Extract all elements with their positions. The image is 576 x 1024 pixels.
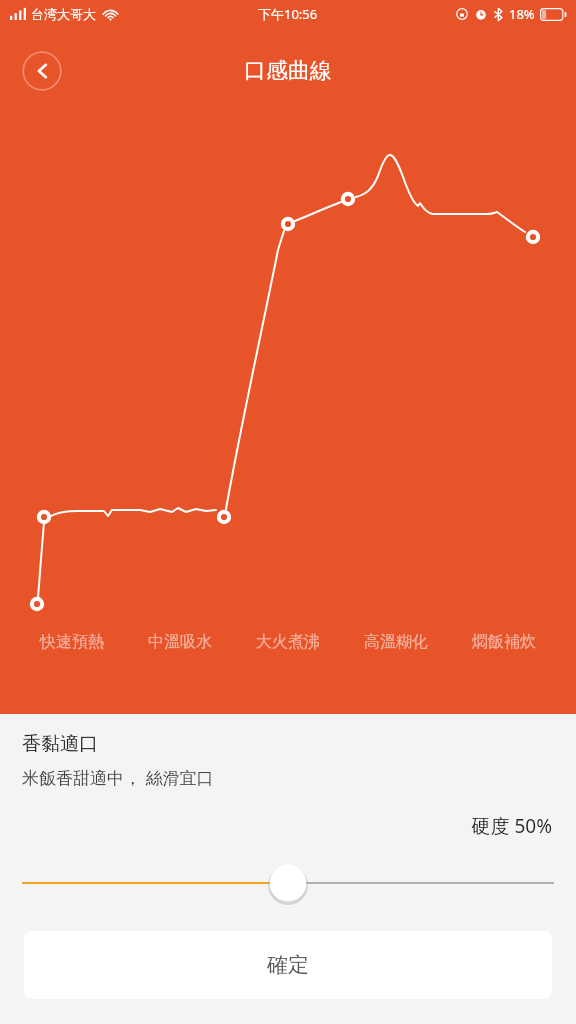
staticText: 下午10:56	[258, 5, 318, 23]
staticText: 高溫糊化	[364, 632, 428, 652]
staticText: 快速預熱	[40, 632, 104, 652]
button[interactable]: Back	[22, 51, 62, 91]
staticText: 口感曲線	[244, 57, 332, 85]
button[interactable]: Hardness slider	[0, 861, 576, 905]
button[interactable]: 確定	[24, 931, 552, 999]
staticText: 硬度 50%	[0, 813, 552, 839]
staticText: 18%	[509, 5, 535, 23]
staticText: 中溫吸水	[148, 632, 212, 652]
staticText: 米飯香甜適中， 絲滑宜口	[22, 766, 214, 789]
staticText: 確定	[267, 952, 309, 978]
staticText: 燜飯補炊	[472, 632, 536, 652]
staticText: 台湾大哥大	[31, 6, 96, 22]
staticText: 大火煮沸	[256, 632, 320, 652]
staticText: 香黏適口	[22, 732, 98, 756]
